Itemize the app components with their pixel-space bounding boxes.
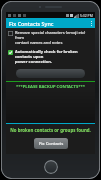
staticText: No broken contacts or groups found. bbox=[6, 127, 95, 133]
staticText: 5:32 PM bbox=[80, 13, 93, 18]
button[interactable]: Remove special characters (emoji etc) fr… bbox=[6, 28, 95, 47]
button[interactable]: Automatically check for broken contacts … bbox=[6, 47, 95, 66]
staticText: power connection. bbox=[15, 59, 52, 64]
button[interactable]: More options bbox=[87, 18, 95, 28]
staticText: Fix Contacts Sync bbox=[9, 20, 54, 27]
button[interactable]: Home bbox=[44, 160, 58, 174]
staticText: Automatically check for broken contacts … bbox=[15, 49, 93, 59]
button[interactable]: Backup contacts bbox=[16, 69, 85, 78]
staticText: ***PLEASE BACKUP CONTACTS*** bbox=[6, 84, 95, 90]
staticText: Fix Contacts bbox=[39, 141, 64, 147]
staticText: contact names and notes bbox=[15, 40, 63, 45]
button[interactable]: Fix Contacts bbox=[34, 138, 68, 149]
staticText: Remove special characters (emoji etc) fr… bbox=[15, 30, 93, 40]
